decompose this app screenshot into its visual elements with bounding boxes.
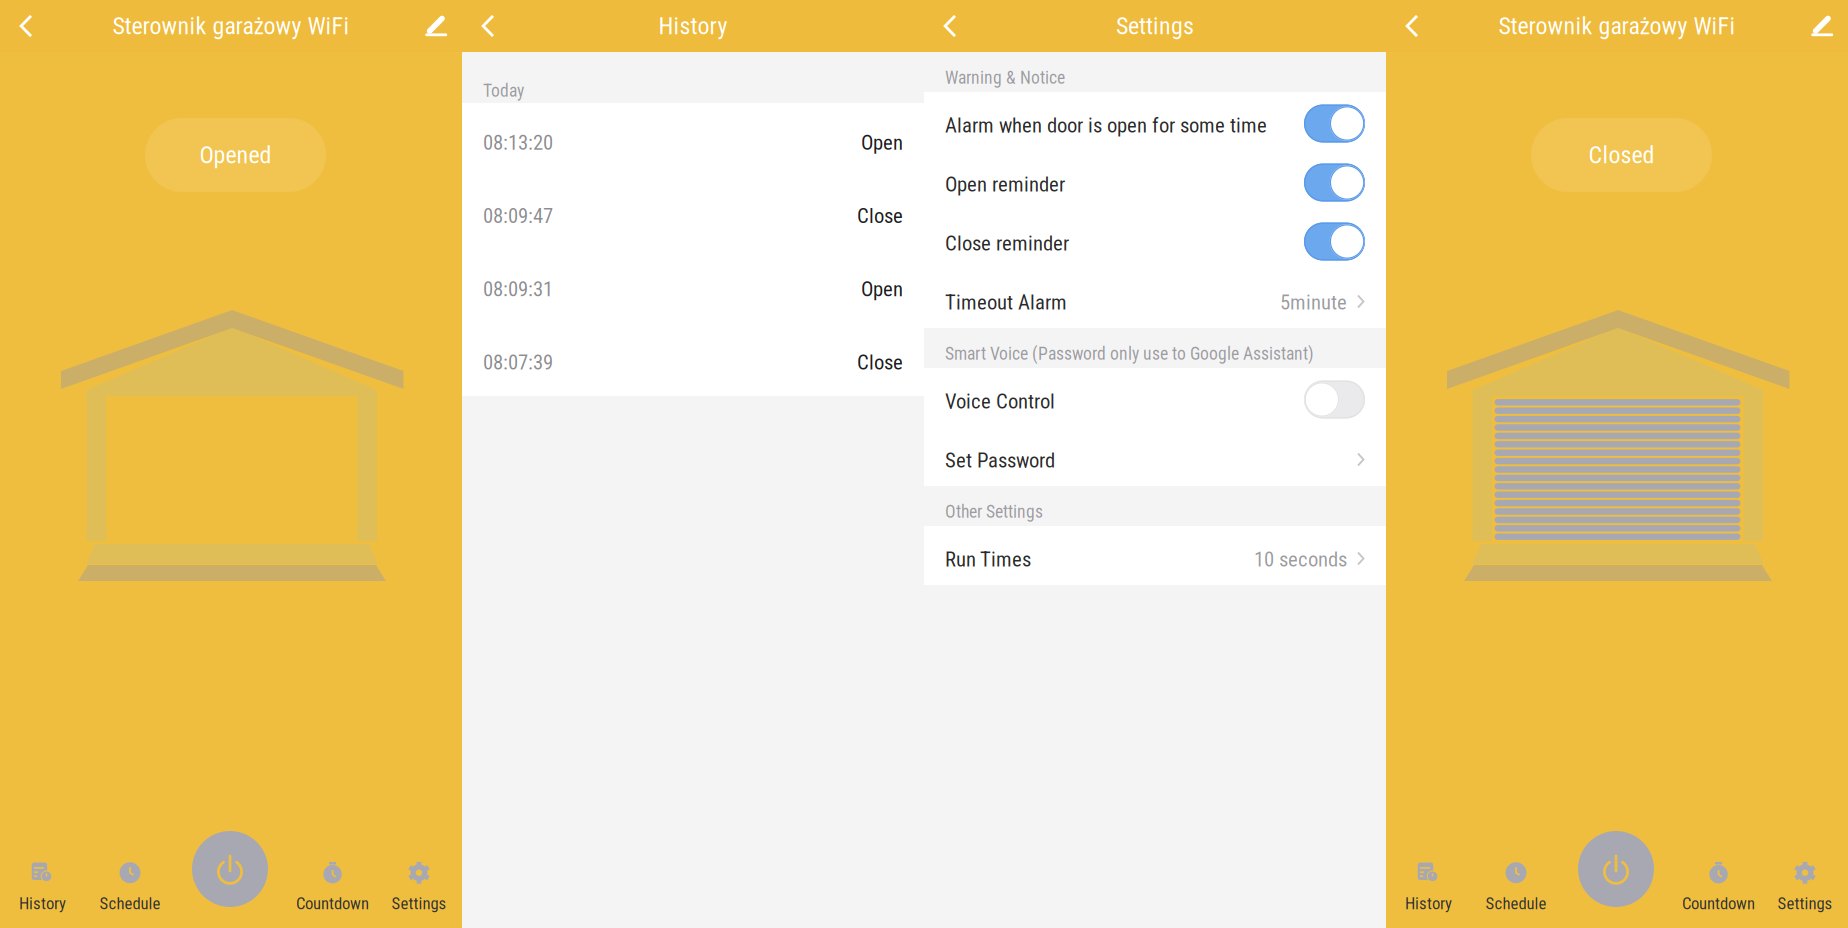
- staticText: Today: [483, 80, 524, 101]
- button[interactable]: Open reminder: [924, 151, 1386, 210]
- button[interactable]: Settings: [1761, 856, 1848, 918]
- staticText: Sterownik garażowy WiFi: [1498, 12, 1735, 40]
- button[interactable]: Run Times: [924, 526, 1386, 585]
- staticText: 08:09:31: [483, 277, 553, 301]
- staticText: Countdown: [296, 894, 369, 913]
- button[interactable]: Close reminder: [924, 210, 1386, 269]
- button[interactable]: Settings: [375, 856, 463, 918]
- staticText: Schedule: [1485, 894, 1546, 913]
- staticText: Run Times: [945, 547, 1031, 572]
- button[interactable]: Edit: [1796, 0, 1848, 52]
- staticText: Voice Control: [945, 389, 1055, 414]
- staticText: Timeout Alarm: [945, 290, 1067, 315]
- button[interactable]: 08:13:20: [462, 103, 924, 176]
- staticText: 10 seconds: [1254, 547, 1347, 572]
- button[interactable]: Back: [0, 0, 52, 52]
- staticText: Other Settings: [945, 501, 1043, 522]
- button[interactable]: 08:09:31: [462, 249, 924, 323]
- staticText: Closed: [1588, 141, 1654, 169]
- button[interactable]: Back: [1386, 0, 1438, 52]
- staticText: 08:07:39: [483, 350, 553, 374]
- button[interactable]: 08:09:47: [462, 176, 924, 249]
- staticText: Warning & Notice: [945, 67, 1065, 88]
- staticText: History: [658, 12, 727, 40]
- staticText: Set Password: [945, 448, 1055, 473]
- button[interactable]: Countdown: [288, 856, 376, 918]
- staticText: Schedule: [99, 894, 160, 913]
- button[interactable]: Timeout Alarm: [924, 269, 1386, 328]
- staticText: Settings: [1116, 12, 1194, 40]
- staticText: Open reminder: [945, 172, 1065, 197]
- staticText: Open: [861, 130, 903, 155]
- button[interactable]: Schedule: [1472, 856, 1560, 918]
- staticText: Opened: [199, 141, 271, 169]
- button[interactable]: Alarm when door is open for some time: [924, 92, 1386, 151]
- button[interactable]: Schedule: [86, 856, 174, 918]
- button[interactable]: Back: [924, 0, 976, 52]
- staticText: Smart Voice (Password only use to Google…: [945, 343, 1314, 364]
- staticText: Sterownik garażowy WiFi: [112, 12, 349, 40]
- button[interactable]: 08:07:39: [462, 323, 924, 396]
- button[interactable]: Power: [1578, 831, 1654, 907]
- staticText: History: [1405, 894, 1452, 913]
- button[interactable]: Voice Control: [924, 368, 1386, 427]
- staticText: Settings: [391, 894, 446, 913]
- staticText: 08:09:47: [483, 204, 553, 228]
- staticText: 5minute: [1280, 290, 1347, 315]
- button[interactable]: History: [0, 856, 86, 918]
- staticText: Countdown: [1682, 894, 1755, 913]
- staticText: 08:13:20: [483, 130, 553, 155]
- staticText: Close: [857, 350, 903, 374]
- staticText: Alarm when door is open for some time: [945, 113, 1267, 138]
- button[interactable]: Countdown: [1674, 856, 1762, 918]
- button[interactable]: Power: [192, 831, 268, 907]
- staticText: Close: [857, 204, 903, 228]
- button[interactable]: Set Password: [924, 427, 1386, 486]
- button[interactable]: Back: [462, 0, 514, 52]
- button[interactable]: Edit: [410, 0, 462, 52]
- staticText: Close reminder: [945, 231, 1069, 256]
- button[interactable]: History: [1384, 856, 1472, 918]
- staticText: Open: [861, 277, 903, 301]
- staticText: Settings: [1777, 894, 1832, 913]
- staticText: History: [19, 894, 66, 913]
